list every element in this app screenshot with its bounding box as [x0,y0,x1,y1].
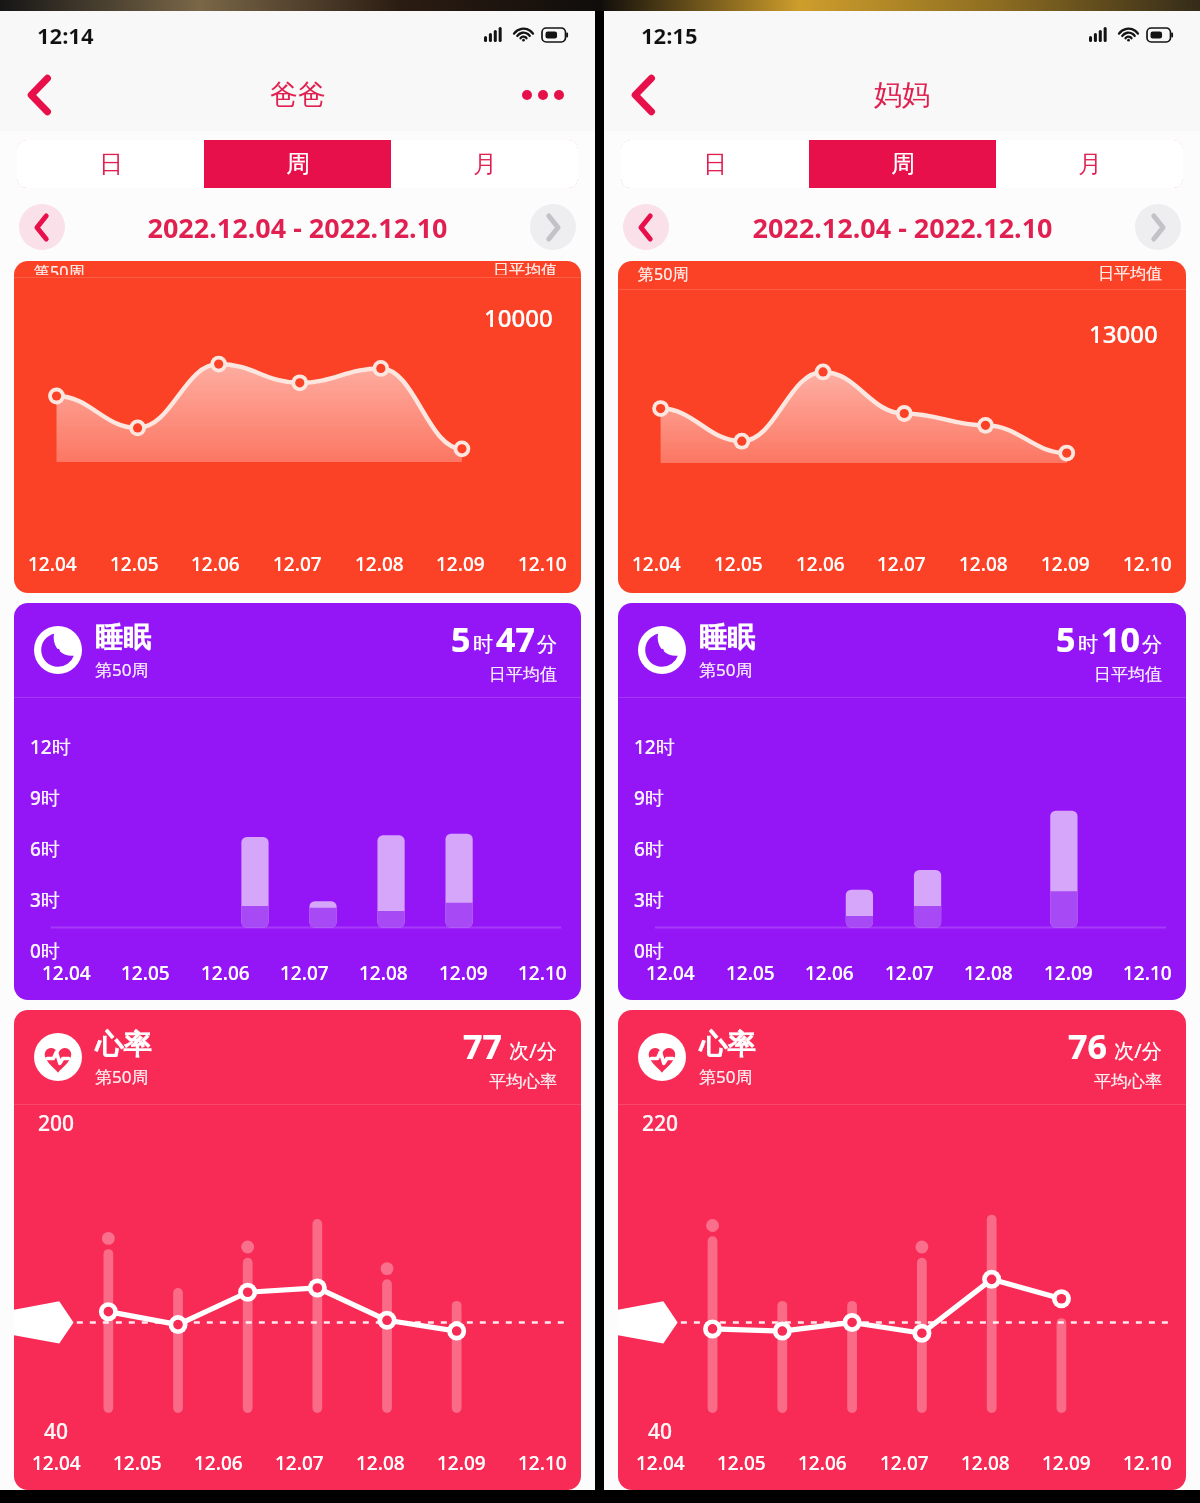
staticText: 12.10 [1123,551,1172,577]
staticText: 12.08 [355,551,404,577]
staticText: 12.10 [518,960,567,986]
staticText: 77 [463,1023,502,1069]
staticText: 9时 [30,785,60,811]
staticText: 分 [1142,632,1162,657]
staticText: 12.10 [518,551,567,577]
staticText: 10 [1101,616,1140,662]
staticText: 12.07 [275,1450,324,1476]
staticText: 40 [44,1417,69,1446]
staticText: 第50周 [638,263,689,285]
staticText: 12.06 [796,551,845,577]
staticText: 日平均值 [489,664,557,685]
staticText: 3时 [634,887,664,913]
button[interactable]: Back [12,67,68,123]
staticText: 睡眠 [95,620,151,655]
staticText: 10000 [484,301,553,334]
staticText: 月 [1078,149,1102,179]
staticText: 周 [891,149,915,179]
staticText: 6时 [634,836,664,862]
staticText: 日 [99,149,123,179]
staticText: 77 [25,1285,44,1307]
staticText: 12.04 [32,1450,81,1476]
button[interactable]: 周 [809,140,996,188]
staticText: 心率 [95,1027,151,1062]
staticText: 12.06 [201,960,250,986]
staticText: 平均心率 [1094,1071,1162,1092]
button[interactable]: 心率 [618,1010,1186,1490]
staticText: 12.05 [121,960,170,986]
button[interactable]: More options [513,73,573,117]
button[interactable]: Previous week [19,204,65,250]
staticText: 12.08 [961,1450,1010,1476]
button[interactable]: 第50周 [14,261,581,593]
staticText: 12.05 [717,1450,766,1476]
staticText: 40 [648,1417,673,1446]
staticText: 12:14 [37,20,94,50]
staticText: 12.04 [646,960,695,986]
staticText: 12.10 [1123,960,1172,986]
staticText: 次/分 [1109,1037,1162,1064]
staticText: 时 [1078,632,1098,657]
staticText: 5 [451,616,471,662]
staticText: 时 [473,632,493,657]
staticText: 12.07 [877,551,926,577]
staticText: 睡眠 [699,620,755,655]
button[interactable]: 第50周 [618,261,1186,593]
button[interactable]: 周 [204,140,391,188]
staticText: 第50周 [95,658,149,681]
staticText: 12.04 [632,551,681,577]
staticText: 日 [703,149,727,179]
staticText: 第50周 [699,658,753,681]
staticText: 12.10 [1123,1450,1172,1476]
staticText: 12.06 [805,960,854,986]
staticText: 12.09 [439,960,488,986]
button[interactable]: Previous week [623,204,669,250]
staticText: 12.04 [28,551,77,577]
staticText: 76 [1068,1023,1107,1069]
staticText: 47 [496,616,535,662]
staticText: 12.07 [280,960,329,986]
staticText: 13000 [1089,317,1158,350]
staticText: 12.10 [518,1450,567,1476]
staticText: 12.06 [191,551,240,577]
button[interactable]: 月 [391,140,578,188]
staticText: 妈妈 [874,77,930,112]
button[interactable]: Back [616,67,672,123]
staticText: 3时 [30,887,60,913]
staticText: 12.04 [636,1450,685,1476]
button[interactable]: Next week [530,204,576,250]
staticText: 12时 [30,734,71,760]
staticText: 12.09 [1044,960,1093,986]
button[interactable]: 睡眠 [14,603,581,1000]
staticText: 第50周 [699,1065,753,1088]
button[interactable]: Next week [1135,204,1181,250]
staticText: 12.05 [714,551,763,577]
button[interactable]: 日 [17,140,204,188]
staticText: 6时 [30,836,60,862]
staticText: 平均心率 [489,1071,557,1092]
button[interactable]: 睡眠 [618,603,1186,1000]
staticText: 心率 [699,1027,755,1062]
staticText: 2022.12.04 - 2022.12.10 [752,209,1053,246]
staticText: 0时 [30,938,60,964]
staticText: 12时 [634,734,675,760]
staticText: 9时 [634,785,664,811]
staticText: 第50周 [34,261,85,275]
staticText: 200 [38,1109,75,1138]
staticText: 12:15 [641,20,698,50]
staticText: 12.09 [437,1450,486,1476]
staticText: 12.08 [356,1450,405,1476]
staticText: 12.09 [1042,1450,1091,1476]
staticText: 周 [286,149,310,179]
button[interactable]: 心率 [14,1010,581,1490]
staticText: 12.06 [194,1450,243,1476]
button[interactable]: 日 [621,140,809,188]
staticText: 分 [537,632,557,657]
staticText: 12.05 [726,960,775,986]
staticText: 12.07 [885,960,934,986]
staticText: 爸爸 [270,77,326,112]
staticText: 日平均值 [1094,664,1162,685]
staticText: 12.08 [964,960,1013,986]
button[interactable]: 月 [996,140,1183,188]
staticText: 日平均值 [493,261,557,275]
